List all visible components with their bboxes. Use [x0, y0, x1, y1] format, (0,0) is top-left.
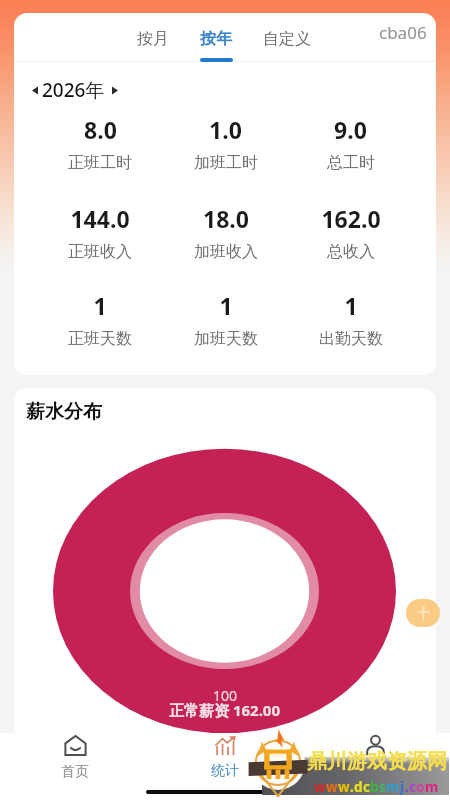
staticText: c	[363, 778, 370, 796]
staticText: 总工时	[327, 153, 375, 173]
staticText: m	[425, 778, 439, 796]
staticText: b	[370, 778, 379, 796]
staticText: 18.0	[203, 203, 249, 234]
staticText: c	[409, 778, 416, 796]
staticText: 2026年	[42, 77, 105, 103]
staticText: 8.0	[84, 114, 117, 145]
staticText: 100	[213, 686, 238, 705]
staticText: 按月	[137, 29, 169, 49]
staticText: s	[379, 778, 386, 796]
button[interactable]: cba06	[379, 21, 427, 44]
staticText: 正常薪资 162.00	[169, 700, 281, 720]
staticText: 1.0	[209, 114, 242, 145]
staticText: 我的	[361, 763, 389, 781]
button[interactable]: 2026年	[32, 77, 118, 103]
staticText: 加班天数	[194, 329, 258, 349]
staticText: 按年	[200, 29, 232, 49]
staticText: 首页	[61, 763, 89, 781]
staticText: .	[350, 778, 354, 796]
staticText: w	[338, 778, 350, 796]
button[interactable]: 按月	[122, 17, 184, 67]
staticText: 加班收入	[194, 242, 258, 262]
staticText: d	[354, 778, 363, 796]
staticText: .	[405, 778, 409, 796]
staticText: o	[416, 778, 425, 796]
button[interactable]: 我的	[300, 733, 450, 783]
staticText: 1	[219, 290, 233, 321]
staticText: 9.0	[334, 114, 367, 145]
staticText: 鼎川游戏资源网	[307, 749, 447, 774]
staticText: 正班收入	[68, 242, 132, 262]
staticText: m	[386, 778, 400, 796]
staticText: 162.0	[321, 203, 381, 234]
staticText: j	[400, 778, 405, 796]
staticText: w	[314, 778, 326, 796]
staticText: cba06	[379, 21, 427, 44]
button[interactable]: 按年	[184, 17, 248, 67]
staticText: 统计	[211, 762, 239, 780]
staticText: 出勤天数	[319, 329, 383, 349]
staticText: 1	[344, 290, 358, 321]
staticText: 144.0	[70, 203, 130, 234]
staticText: 正班工时	[68, 153, 132, 173]
staticText: 总收入	[327, 242, 375, 262]
button[interactable]: 首页	[0, 733, 150, 783]
staticText: 正班天数	[68, 329, 132, 349]
staticText: 1	[93, 290, 107, 321]
button[interactable]: 统计	[150, 733, 300, 783]
staticText: 薪水分布	[26, 400, 102, 424]
staticText: w	[326, 778, 338, 796]
button[interactable]: 自定义	[256, 17, 318, 67]
staticText: 加班工时	[194, 153, 258, 173]
button[interactable]: Add record	[406, 599, 440, 627]
staticText: 自定义	[263, 29, 311, 49]
